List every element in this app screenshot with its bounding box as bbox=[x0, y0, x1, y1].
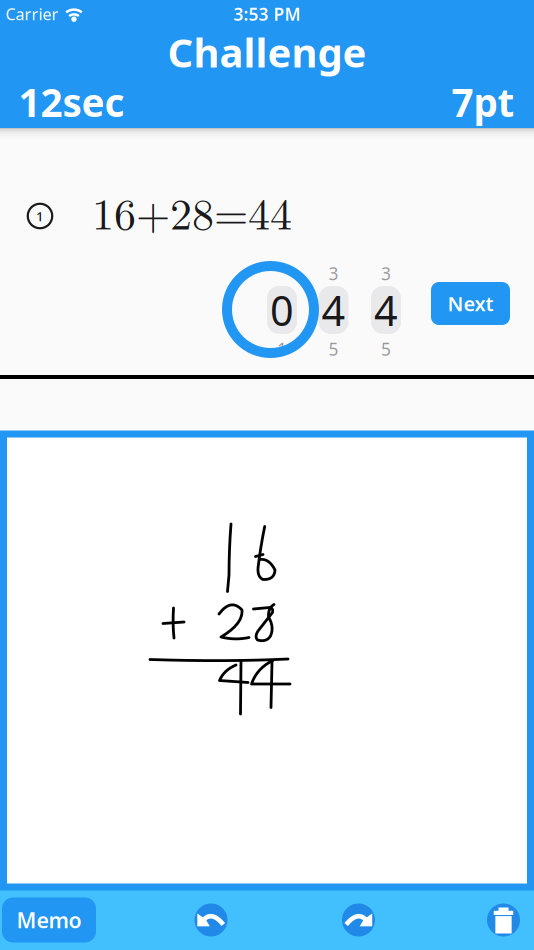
staticText: 3 bbox=[381, 262, 391, 285]
staticText: 5 bbox=[328, 337, 338, 360]
staticText: 12sec bbox=[18, 76, 124, 128]
staticText: 5 bbox=[381, 337, 391, 360]
button[interactable]: Redo bbox=[342, 903, 375, 936]
staticText: 16+28=44 bbox=[92, 194, 292, 238]
staticText: 4 bbox=[374, 283, 398, 337]
button[interactable]: Clear drawing bbox=[487, 903, 520, 936]
staticText: 7pt bbox=[451, 76, 514, 128]
button[interactable]: Undo bbox=[194, 903, 227, 936]
staticText: 3 bbox=[328, 262, 338, 285]
staticText: 0 bbox=[270, 283, 294, 337]
button[interactable]: Ones digit picker bbox=[363, 255, 409, 365]
staticText: Memo bbox=[16, 906, 81, 934]
button[interactable]: Next bbox=[431, 282, 510, 325]
staticText: 1 bbox=[277, 337, 287, 360]
staticText: Carrier bbox=[5, 3, 58, 25]
staticText: Next bbox=[447, 290, 493, 317]
button[interactable]: Hundreds digit picker bbox=[259, 255, 305, 365]
button[interactable]: Memo bbox=[2, 897, 96, 942]
staticText: 1 bbox=[36, 207, 44, 225]
button[interactable]: Tens digit picker bbox=[310, 255, 356, 365]
staticText: Challenge bbox=[167, 25, 366, 78]
staticText: 4 bbox=[321, 283, 345, 337]
staticText: 3:53 PM bbox=[233, 2, 300, 25]
